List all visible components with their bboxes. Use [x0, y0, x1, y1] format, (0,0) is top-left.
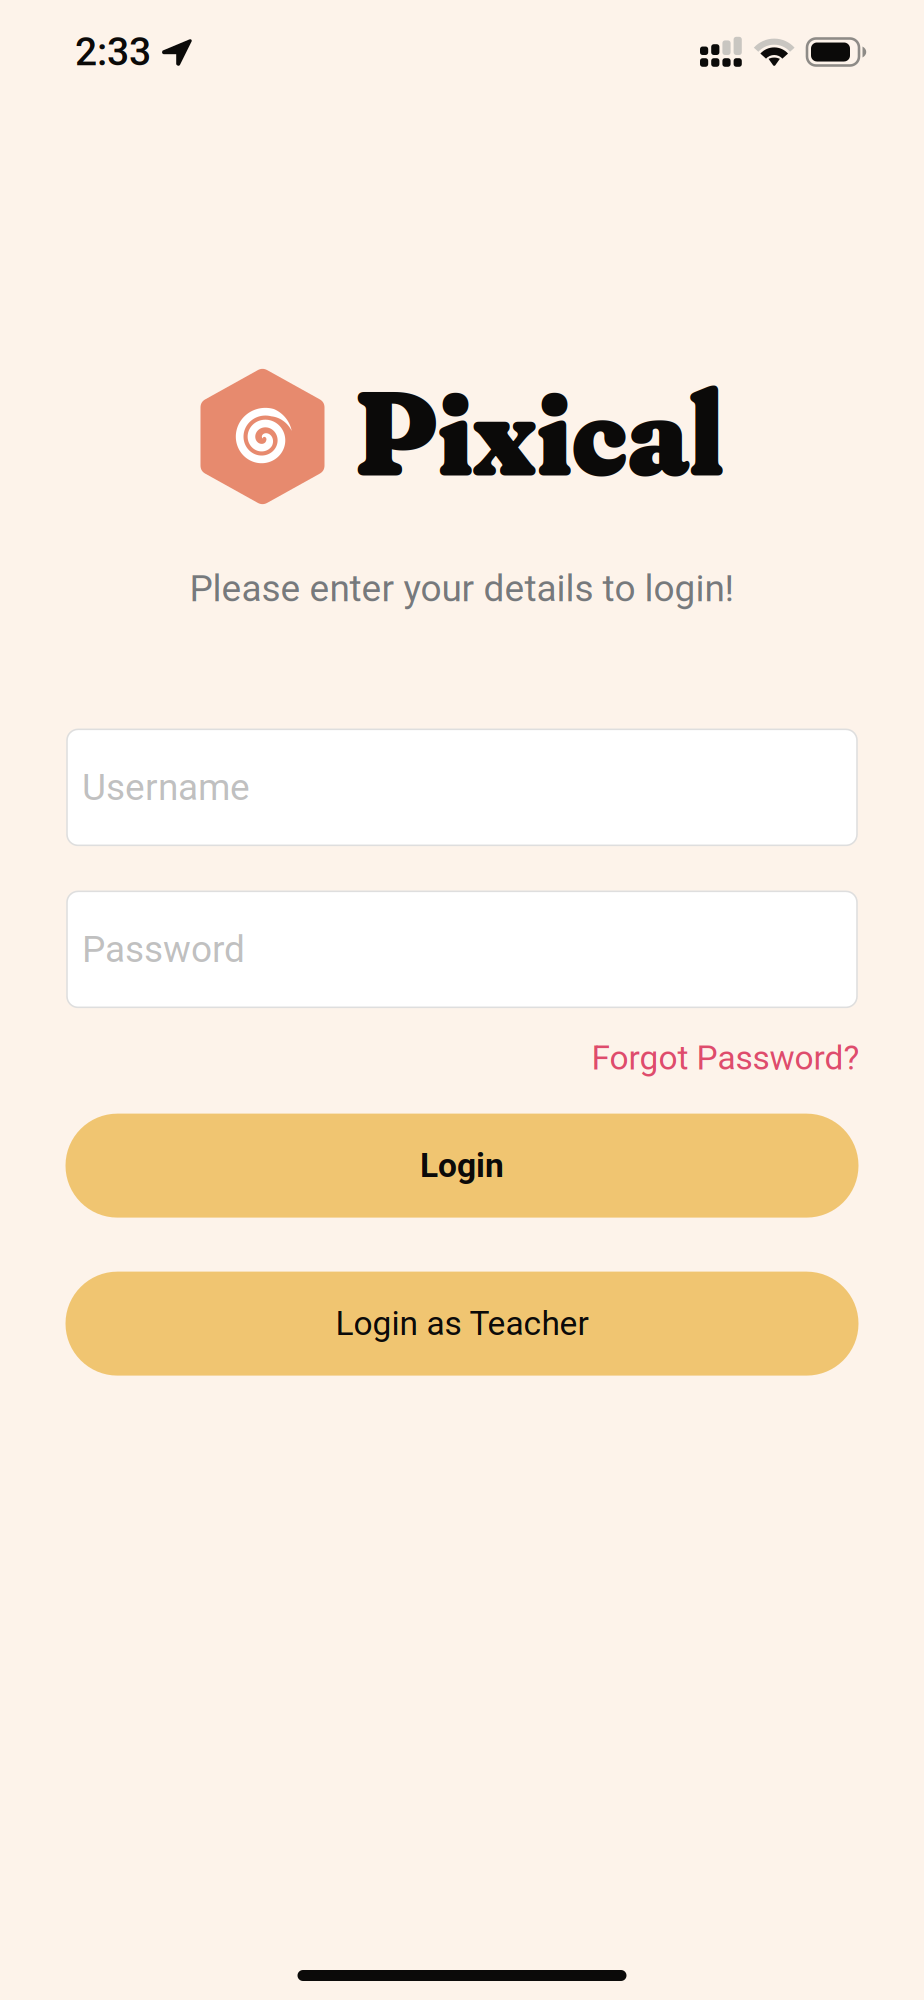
- staticText: Forgot Password?: [591, 1038, 859, 1078]
- staticText: Login as Teacher: [335, 1304, 588, 1343]
- staticText: Please enter your details to login!: [189, 567, 734, 610]
- staticText: Pixical: [354, 359, 723, 506]
- button[interactable]: Login as Teacher: [65, 1272, 858, 1376]
- staticText: 2:33: [75, 29, 151, 75]
- staticText: Password: [82, 928, 245, 971]
- staticText: Username: [82, 766, 250, 809]
- button[interactable]: Password: [67, 891, 857, 1007]
- staticText: Login: [420, 1146, 504, 1185]
- button[interactable]: Username: [67, 729, 857, 845]
- button[interactable]: Login: [65, 1114, 858, 1218]
- button[interactable]: Forgot Password?: [591, 1038, 859, 1078]
